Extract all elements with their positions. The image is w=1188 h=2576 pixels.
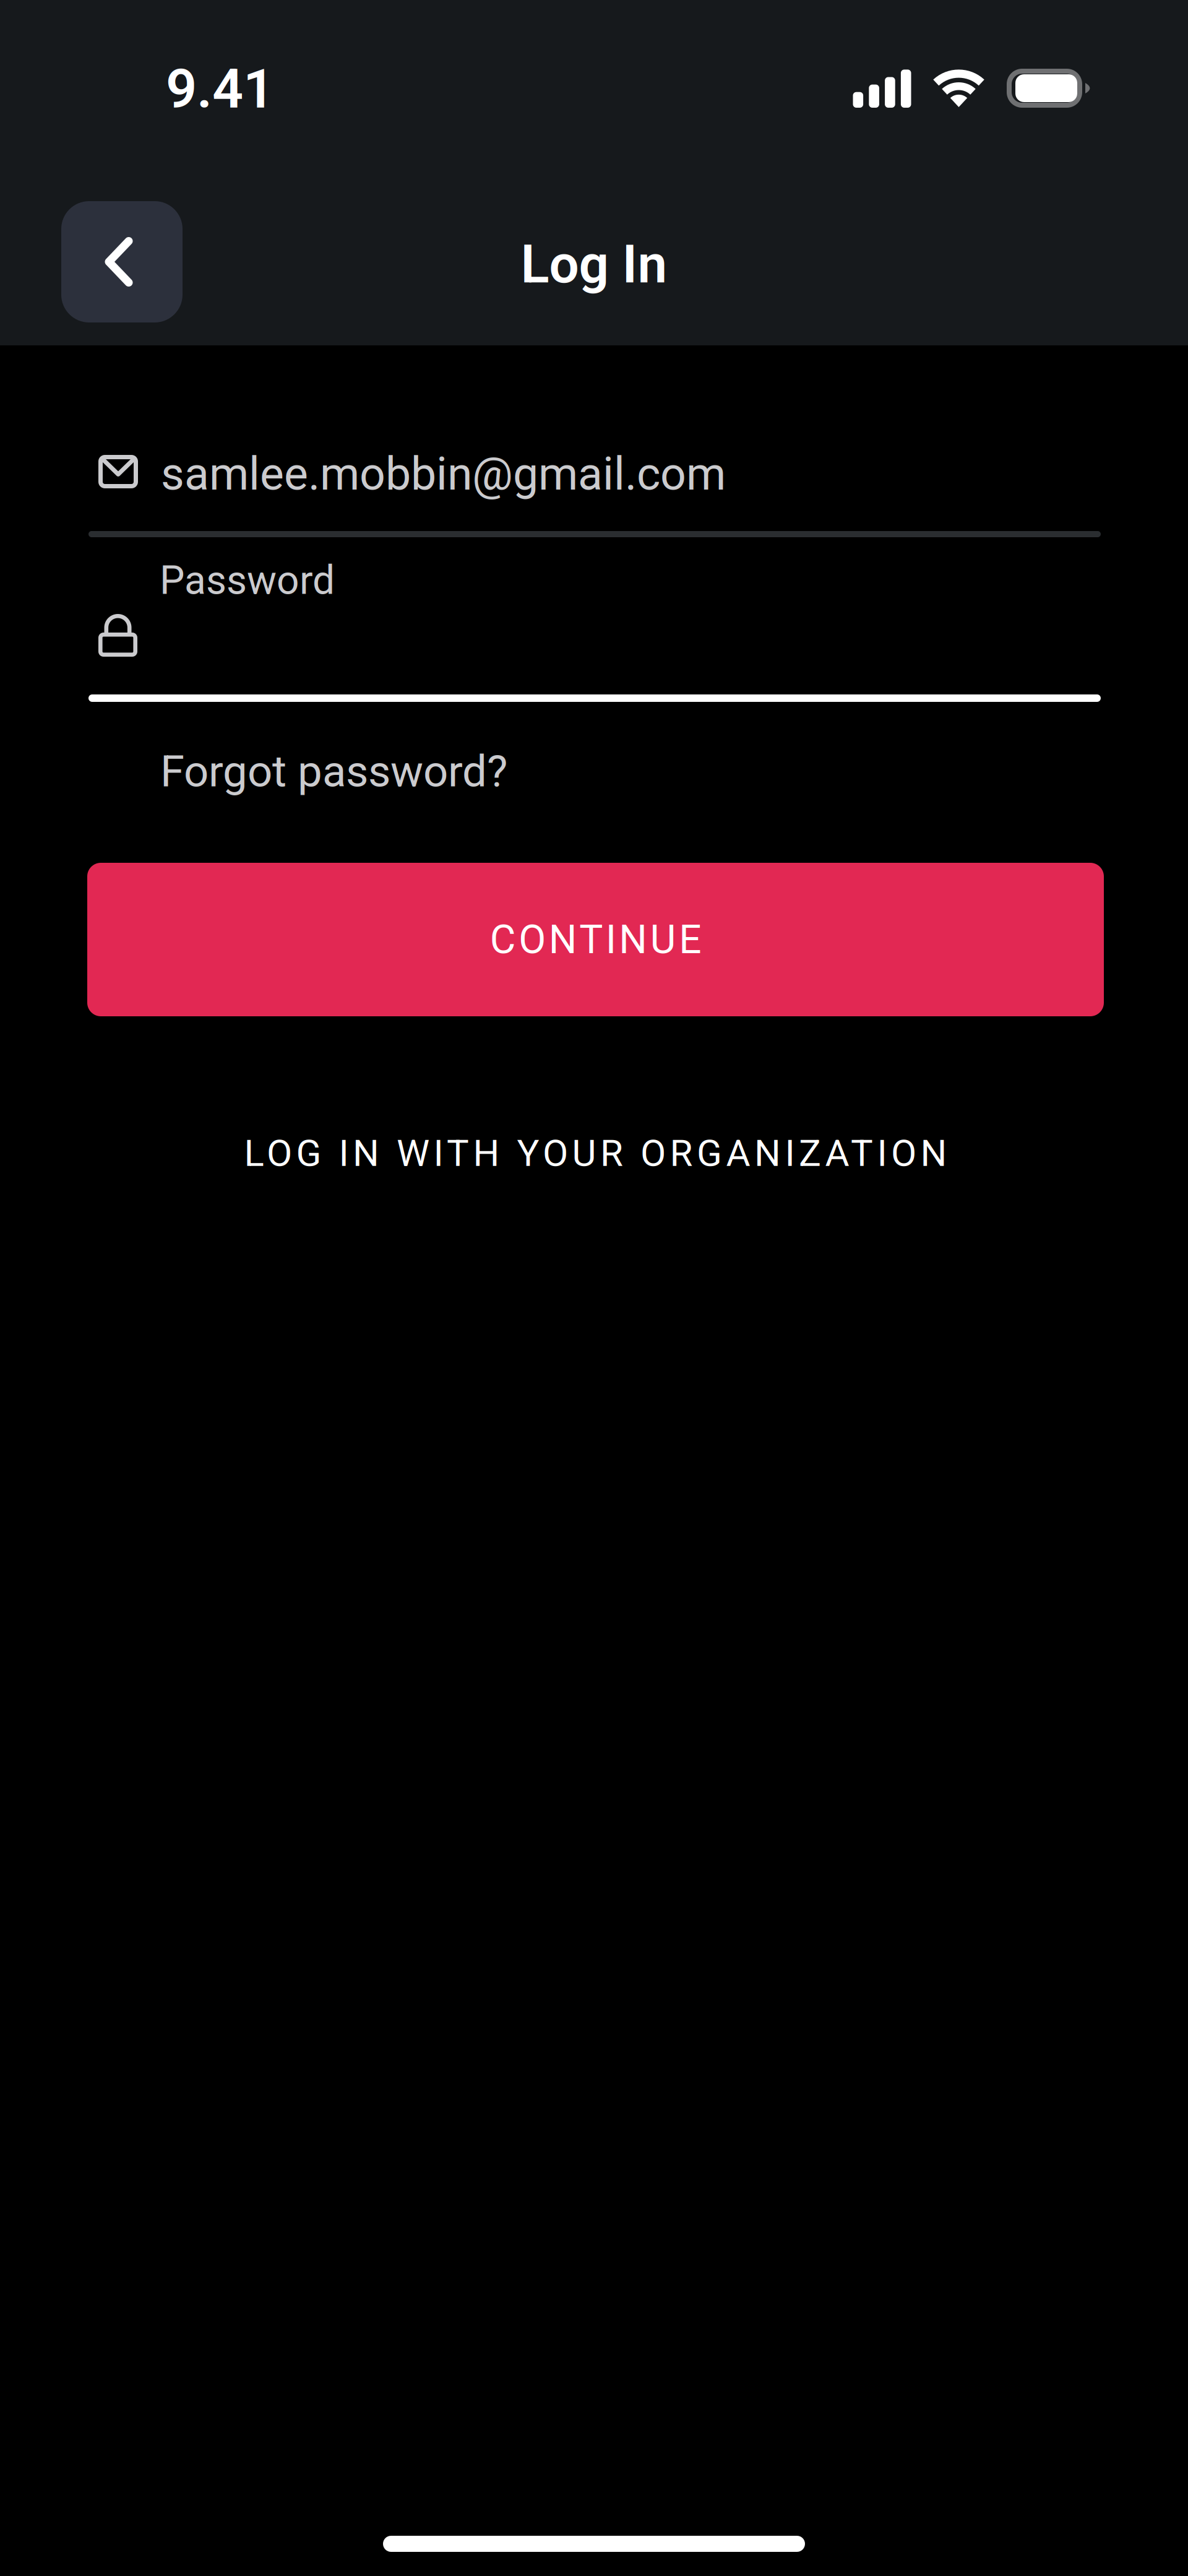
button[interactable]: LOG IN WITH YOUR ORGANIZATION	[87, 1119, 1104, 1187]
staticText: Forgot password?	[160, 746, 507, 797]
button[interactable]: CONTINUE	[87, 863, 1104, 1016]
staticText: LOG IN WITH YOUR ORGANIZATION	[244, 1131, 947, 1175]
staticText: 9.41	[166, 57, 274, 121]
staticText: Log In	[521, 233, 667, 295]
button[interactable]: Forgot password?	[150, 737, 517, 806]
staticText: CONTINUE	[490, 916, 701, 963]
staticText: Password	[160, 557, 335, 603]
staticText: samlee.mobbin@gmail.com	[161, 447, 726, 501]
button[interactable]: Back	[61, 201, 183, 322]
